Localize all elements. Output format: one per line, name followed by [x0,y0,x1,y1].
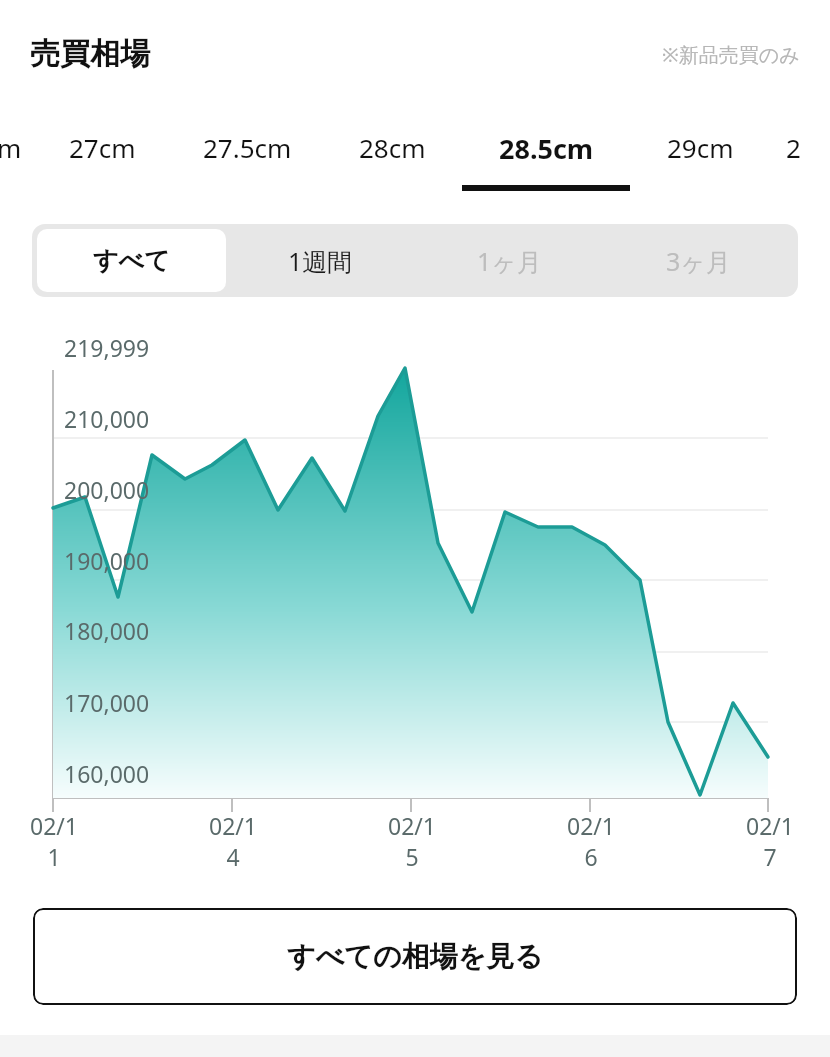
staticText: ※新品売買のみ [662,41,800,68]
staticText: 200,000 [64,474,150,505]
staticText: 160,000 [64,758,150,789]
staticText: 219,999 [64,332,150,363]
staticText: 2 [786,130,801,165]
staticText: 1ヶ月 [477,244,542,278]
button[interactable]: 29cm [630,108,770,196]
button[interactable]: 28.5cm [462,108,630,196]
staticText: 180,000 [64,615,150,646]
button[interactable]: すべて [37,229,226,292]
staticText: 28.5cm [499,130,594,167]
staticText: 02/11 [24,810,84,872]
button[interactable]: 28cm [322,108,462,196]
staticText: すべて [93,245,170,276]
staticText: 170,000 [64,687,150,718]
staticText: 3ヶ月 [666,244,731,278]
button[interactable]: 27cm [32,108,172,196]
button[interactable]: 3ヶ月 [604,229,793,292]
staticText: 売買相場 [30,35,150,73]
button[interactable]: 2 [770,108,816,196]
staticText: 27.5cm [203,130,292,165]
staticText: 28cm [359,130,426,165]
staticText: 1週間 [288,244,353,278]
button[interactable]: 1週間 [226,229,415,292]
staticText: 02/14 [203,810,263,872]
staticText: m [0,130,22,165]
button[interactable]: m [0,108,32,196]
staticText: 210,000 [64,403,150,434]
button[interactable]: 1ヶ月 [415,229,604,292]
staticText: 02/16 [561,810,621,872]
staticText: 27cm [69,130,136,165]
button[interactable]: 27.5cm [172,108,322,196]
staticText: すべての相場を見る [287,939,543,974]
staticText: 02/15 [382,810,442,872]
staticText: 190,000 [64,545,150,576]
staticText: 29cm [667,130,734,165]
staticText: 02/17 [740,810,800,872]
button[interactable]: すべての相場を見る [33,908,797,1005]
